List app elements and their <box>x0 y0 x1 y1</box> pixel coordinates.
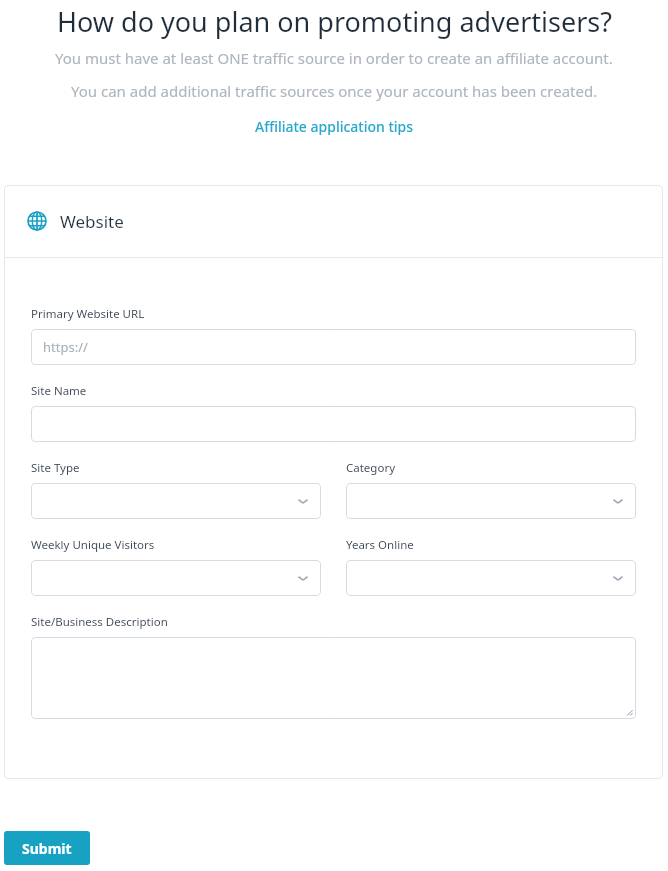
staticText: Years Online <box>346 537 414 553</box>
button[interactable]: Submit <box>4 831 90 865</box>
other: Website <box>27 211 47 231</box>
button[interactable]: https:// <box>31 329 636 365</box>
button[interactable] <box>31 637 636 719</box>
button[interactable]: Open dropdown <box>346 483 636 519</box>
button[interactable]: Website <box>4 185 663 257</box>
staticText: Website <box>60 210 124 233</box>
button[interactable]: Open dropdown <box>346 560 636 596</box>
staticText: Submit <box>22 839 72 858</box>
staticText: You must have at least ONE traffic sourc… <box>55 48 613 68</box>
button[interactable]: Open dropdown <box>31 560 321 596</box>
button[interactable]: Open dropdown <box>31 483 321 519</box>
staticText: Weekly Unique Visitors <box>31 537 155 553</box>
staticText: Site Name <box>31 383 87 399</box>
staticText: Primary Website URL <box>31 306 145 322</box>
staticText: You can add additional traffic sources o… <box>71 81 598 101</box>
staticText: https:// <box>43 338 88 356</box>
button[interactable]: Affiliate application tips <box>251 115 418 138</box>
staticText: Category <box>346 460 396 476</box>
button[interactable] <box>31 406 636 442</box>
staticText: Site Type <box>31 460 80 476</box>
staticText: Affiliate application tips <box>255 117 414 136</box>
staticText: How do you plan on promoting advertisers… <box>57 3 612 40</box>
staticText: Site/Business Description <box>31 614 168 630</box>
